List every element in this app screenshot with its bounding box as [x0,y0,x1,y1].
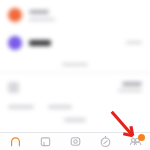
button[interactable] [0,29,150,56]
button[interactable]: Camera [60,133,90,150]
button[interactable]: Library [30,133,60,150]
button[interactable]: Contacts [120,133,150,150]
button[interactable]: Home [0,133,30,150]
button[interactable]: Discover [90,133,120,150]
button[interactable] [0,1,150,29]
